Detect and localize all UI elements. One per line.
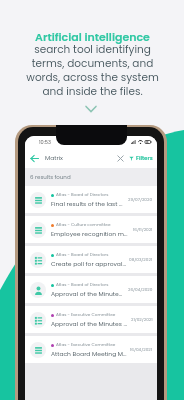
staticText: Atlas - Executive Committee [56,342,116,348]
staticText: search tool identifying terms, documents… [26,42,159,99]
staticText: 16/04/2021 [130,347,153,353]
staticText: Atlas - Executive Committee [56,312,116,318]
staticText: Filters [136,154,153,162]
button[interactable]: Clear search [117,155,124,162]
staticText: 10:53 [39,139,51,146]
button[interactable]: Atlas - Board of Directors [25,246,157,273]
button[interactable]: Atlas - Board of Directors [25,276,157,303]
staticText: Artificial intelligence [35,29,150,44]
button[interactable]: Filters [129,154,153,162]
staticText: 16/11/2021 [133,227,153,233]
staticText: 26/04/2020 [128,287,153,293]
button[interactable]: Atlas - Executive Committee [25,336,157,363]
button[interactable]: Atlas - Executive Committee [25,306,157,333]
staticText: Approval of the Minutes of th... [51,320,128,328]
staticText: Final results of the last quart... [51,200,125,208]
staticText: Atlas - Board of Directors [56,192,109,198]
staticText: Create poll for approval of th... [51,260,126,268]
staticText: Matrix [45,154,63,162]
staticText: Attach Board Meeting Mate... [51,350,127,358]
staticText: 6 results found [30,173,71,181]
staticText: Atlas - Board of Directors [56,282,109,288]
staticText: 29/07/2020 [128,197,153,203]
staticText: Employee recognition mome... [51,230,130,238]
button[interactable]: Atlas - Culture committee [25,216,157,243]
staticText: Approval of the Minutes of th... [51,290,125,298]
staticText: 08/03/2021 [129,257,153,263]
button[interactable]: Atlas - Board of Directors [25,186,157,213]
staticText: 21/02/2021 [131,317,153,323]
button[interactable]: Back [30,154,39,163]
staticText: Atlas - Culture committee [56,222,111,228]
staticText: Atlas - Board of Directors [56,252,109,258]
